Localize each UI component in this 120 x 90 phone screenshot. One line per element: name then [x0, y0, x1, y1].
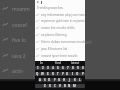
staticText: 9 [77, 66, 79, 70]
button[interactable]: O [75, 72, 80, 76]
button[interactable]: find [55, 61, 61, 65]
button[interactable]: H [62, 78, 67, 82]
button[interactable]: Back [36, 0, 40, 4]
button[interactable]: S [42, 78, 47, 82]
staticText: T [57, 72, 59, 76]
button[interactable]: Q [35, 72, 40, 76]
button[interactable]: X [47, 84, 52, 88]
staticText: F [54, 78, 56, 82]
staticText: latest [71, 61, 80, 65]
staticText: myanm [12, 6, 30, 11]
staticText: C [54, 84, 56, 88]
staticText: X [49, 84, 51, 88]
staticText: D [48, 78, 51, 82]
staticText: 3 [47, 66, 49, 70]
button[interactable]: any information php json name [35, 11, 85, 18]
button[interactable]: N [67, 84, 72, 88]
staticText: 7 [67, 66, 69, 70]
staticText: N [68, 84, 71, 88]
staticText: activ [12, 68, 23, 73]
button[interactable]: 2 [40, 66, 45, 70]
button[interactable]: Shift [35, 84, 42, 88]
button[interactable]: voxsef [3, 22, 28, 27]
button[interactable]: myanm [3, 6, 30, 11]
staticText: K [74, 78, 76, 82]
staticText: V [59, 84, 61, 88]
button[interactable]: five lo [3, 37, 26, 42]
staticText: I [72, 72, 74, 76]
button[interactable]: latest [71, 61, 80, 65]
button[interactable]: F [52, 78, 57, 82]
button[interactable]: java 2 [3, 53, 26, 58]
staticText: java 2 [12, 53, 26, 58]
button[interactable]: 8 [70, 66, 75, 70]
staticText: 6 [62, 66, 64, 70]
button[interactable]: G [57, 78, 62, 82]
button[interactable]: P [80, 72, 85, 76]
button[interactable]: instant sport time results [35, 52, 85, 59]
staticText: R [52, 72, 54, 76]
staticText: G [58, 78, 61, 82]
button[interactable]: 9 [75, 66, 80, 70]
staticText: L [79, 78, 81, 82]
staticText: Z [44, 84, 46, 88]
button[interactable]: K [72, 78, 77, 82]
staticText: myanmar gold rate in myanmar tod [41, 19, 85, 23]
staticText: Trending searches [37, 6, 63, 10]
button[interactable]: R [50, 72, 55, 76]
button[interactable]: film in duban tomorrow results [35, 38, 85, 45]
staticText: B [64, 84, 66, 88]
staticText: 1 [37, 66, 39, 70]
button[interactable]: 4 [50, 66, 55, 70]
staticText: O [76, 72, 79, 76]
staticText: java 8 features list [41, 47, 68, 51]
button[interactable]: C [52, 84, 57, 88]
button[interactable]: 7 [65, 66, 70, 70]
button[interactable]: A [38, 78, 42, 82]
button[interactable]: 0 [80, 66, 85, 70]
button[interactable]: 1 [35, 66, 40, 70]
staticText: M [73, 84, 76, 88]
button[interactable]: Z [42, 84, 47, 88]
button[interactable]: L [77, 78, 82, 82]
button[interactable]: native live results shifts [35, 24, 85, 31]
staticText: A [39, 78, 41, 82]
button[interactable]: myanmar gold rate in myanmar tod [35, 17, 85, 24]
staticText: In [40, 61, 44, 65]
button[interactable]: W [40, 72, 45, 76]
staticText: 0 [82, 66, 84, 70]
staticText: 2 [42, 66, 44, 70]
button[interactable]: V [57, 84, 62, 88]
staticText: Q [36, 72, 39, 76]
button[interactable]: 3 [45, 66, 50, 70]
button[interactable]: E [45, 72, 50, 76]
button[interactable]: Y [60, 72, 65, 76]
button[interactable]: In [40, 61, 44, 65]
staticText: airplanes filtering [41, 33, 67, 37]
staticText: W [41, 72, 44, 76]
staticText: five lo [12, 37, 26, 42]
staticText: 5 [57, 66, 59, 70]
staticText: 8 [72, 66, 74, 70]
staticText: any information php json name [41, 13, 85, 17]
button[interactable]: java 8 features list [35, 45, 85, 52]
staticText: film in duban tomorrow results [41, 40, 85, 44]
button[interactable]: D [47, 78, 52, 82]
staticText: 4 [52, 66, 54, 70]
staticText: E [47, 72, 49, 76]
button[interactable]: U [65, 72, 70, 76]
button[interactable]: J [67, 78, 72, 82]
button[interactable]: activ [3, 68, 23, 73]
staticText: find [55, 61, 61, 65]
button[interactable]: M [72, 84, 77, 88]
staticText: U [66, 72, 69, 76]
button[interactable]: airplanes filtering [35, 31, 85, 38]
staticText: native live results shifts [41, 26, 75, 30]
button[interactable]: B [62, 84, 67, 88]
button[interactable]: T [55, 72, 60, 76]
button[interactable]: Backspace [77, 84, 85, 88]
button[interactable]: I [70, 72, 75, 76]
staticText: P [82, 72, 84, 76]
button[interactable]: 6 [60, 66, 65, 70]
button[interactable]: 5 [55, 66, 60, 70]
